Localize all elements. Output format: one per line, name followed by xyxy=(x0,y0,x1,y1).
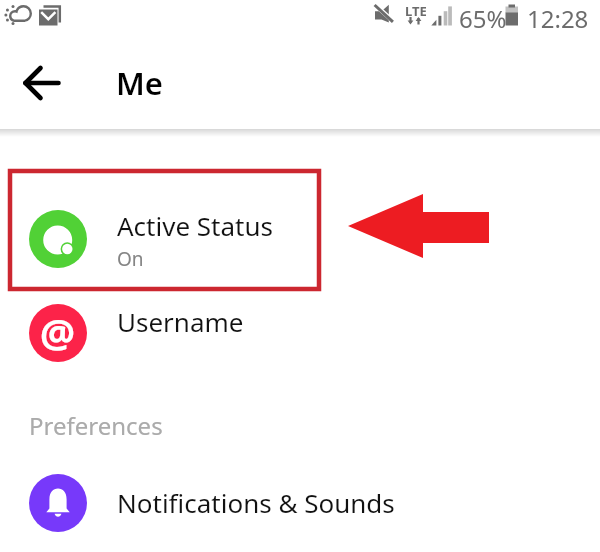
button[interactable]: @ xyxy=(0,290,600,376)
button[interactable]: Notifications & Sounds xyxy=(0,460,600,546)
staticText: LTE xyxy=(405,2,427,20)
button[interactable]: Active Status xyxy=(0,196,600,282)
staticText: Notifications & Sounds xyxy=(117,485,395,520)
staticText: Preferences xyxy=(29,409,163,442)
staticText: 65% xyxy=(459,2,507,35)
staticText: @ xyxy=(40,306,76,359)
staticText: Username xyxy=(117,304,244,339)
staticText: Active Status xyxy=(117,208,273,243)
staticText: Me xyxy=(116,62,163,104)
button[interactable]: Back xyxy=(13,55,69,111)
staticText: On xyxy=(117,246,144,272)
staticText: 12:28 xyxy=(527,2,589,35)
